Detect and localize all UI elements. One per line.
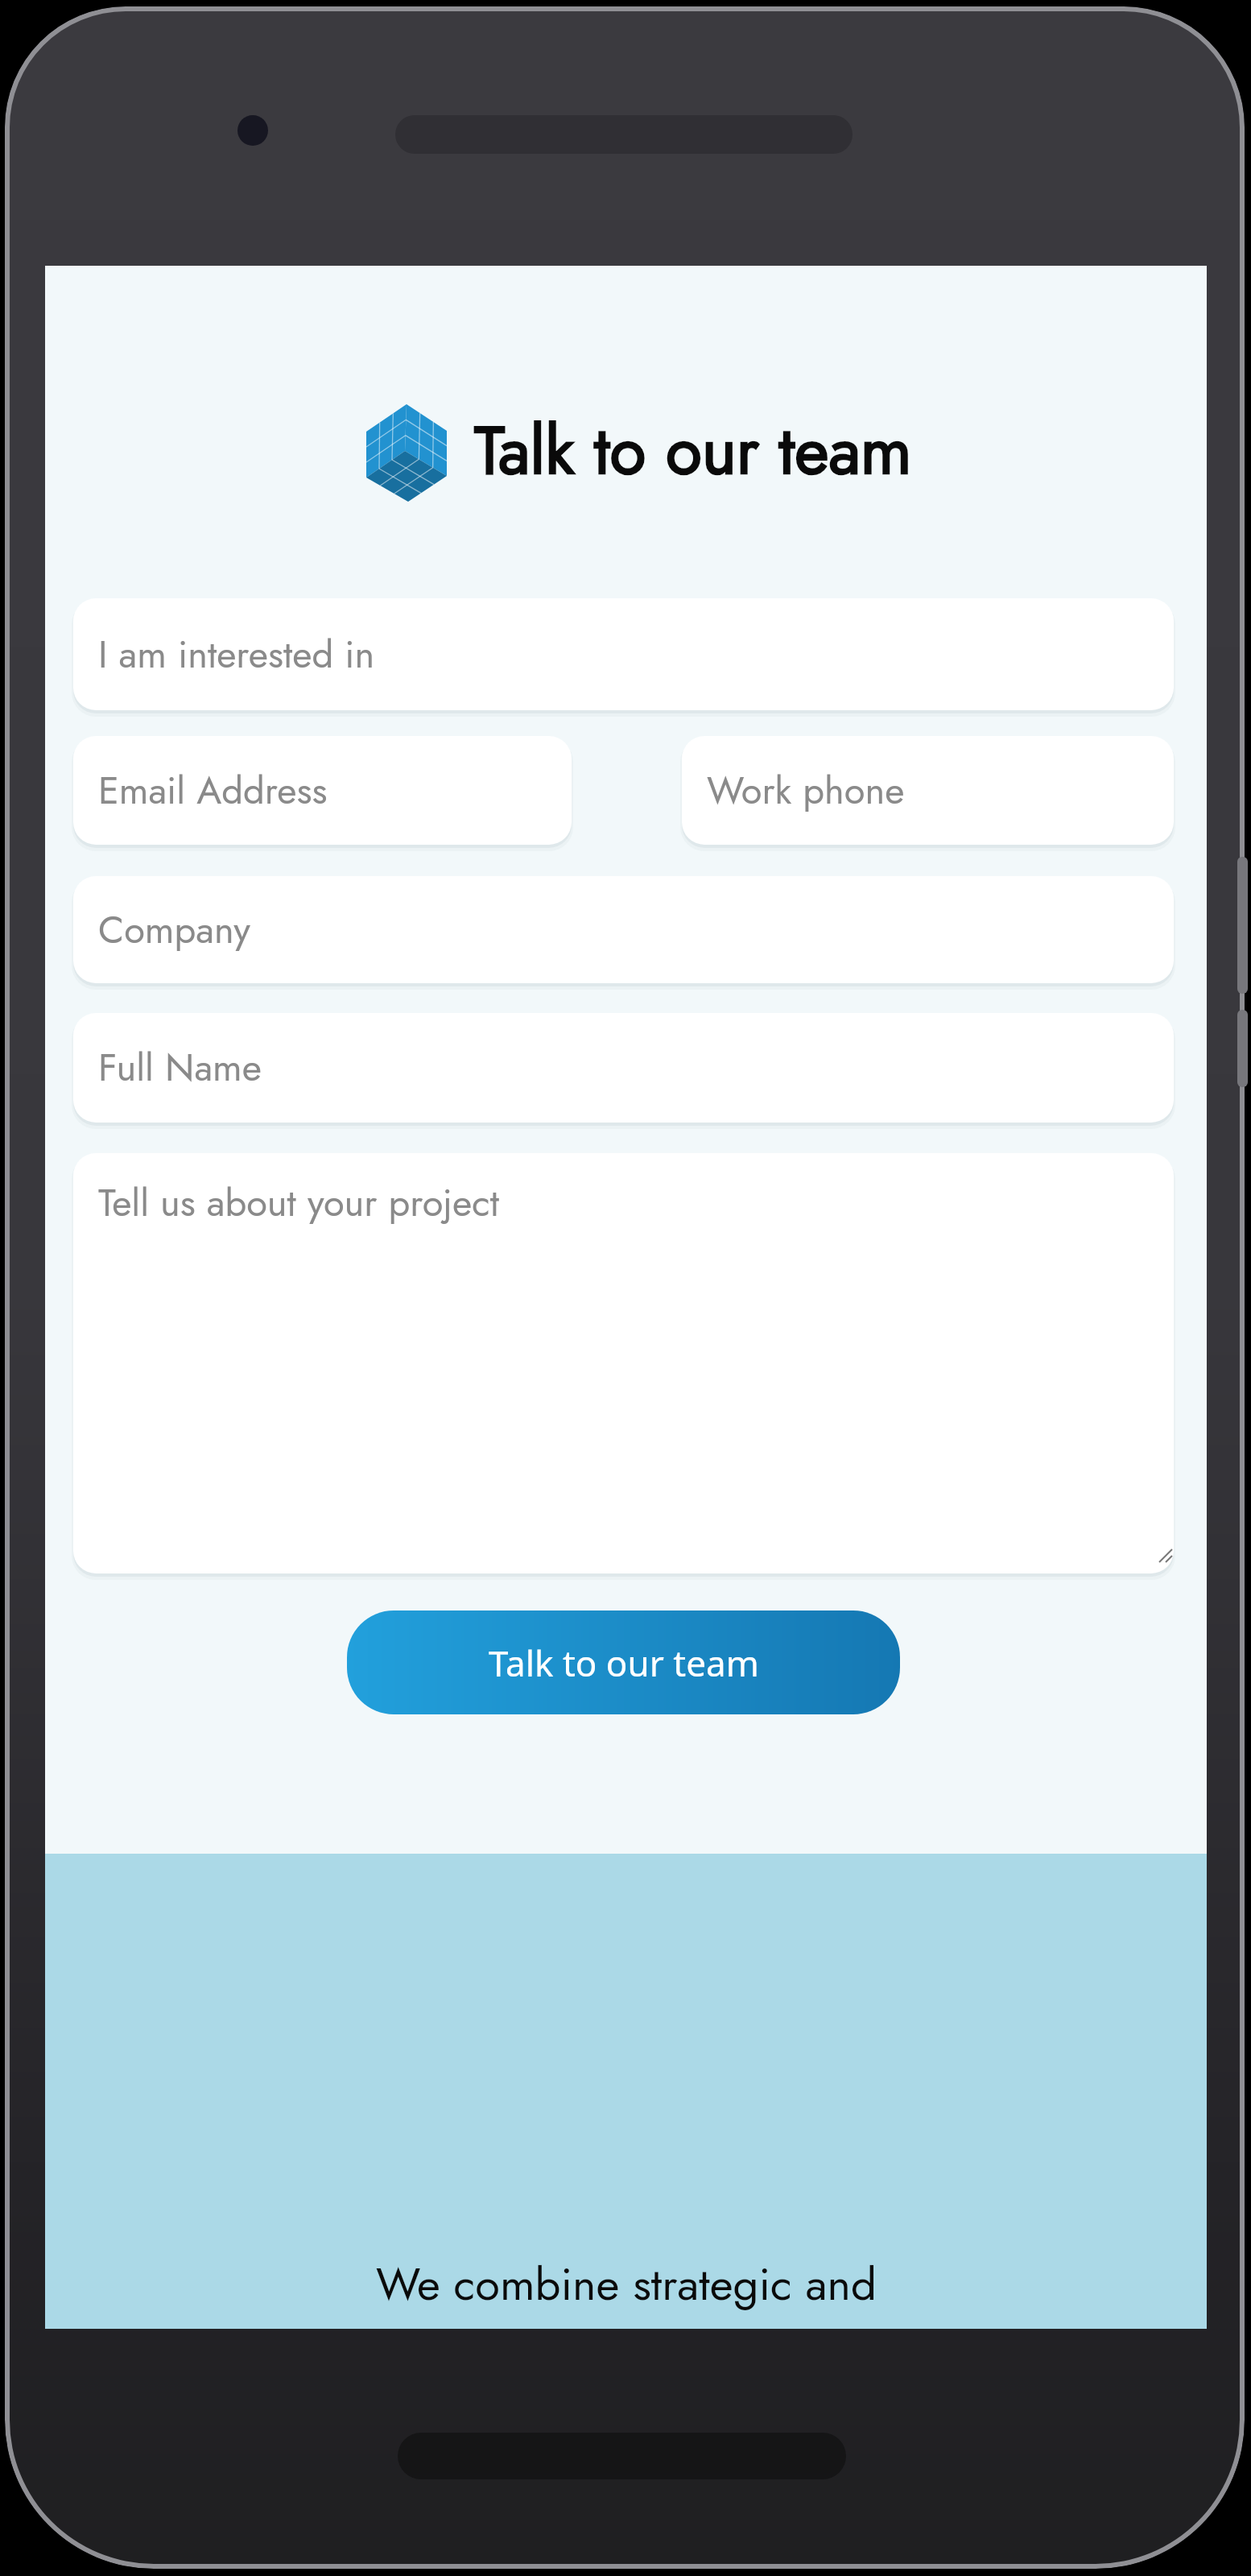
staticText: Email Address [98, 763, 328, 818]
staticText: I am interested in [98, 627, 375, 682]
button[interactable]: Talk to our team [347, 1611, 900, 1714]
button[interactable]: I am interested in [73, 598, 1174, 710]
staticText: We combine strategic and [376, 2251, 877, 2317]
button[interactable]: Email Address [73, 736, 572, 845]
staticText: Company [98, 903, 251, 957]
staticText: Full Name [98, 1040, 262, 1095]
staticText: Tell us about your project [98, 1176, 500, 1230]
staticText: Work phone [707, 763, 905, 818]
button[interactable]: Company [73, 876, 1174, 983]
button[interactable]: Full Name [73, 1013, 1174, 1123]
staticText: Talk to our team [474, 403, 912, 498]
button[interactable]: Tell us about your project [73, 1153, 1174, 1573]
staticText: Talk to our team [489, 1639, 759, 1687]
button[interactable]: Work phone [682, 736, 1174, 845]
